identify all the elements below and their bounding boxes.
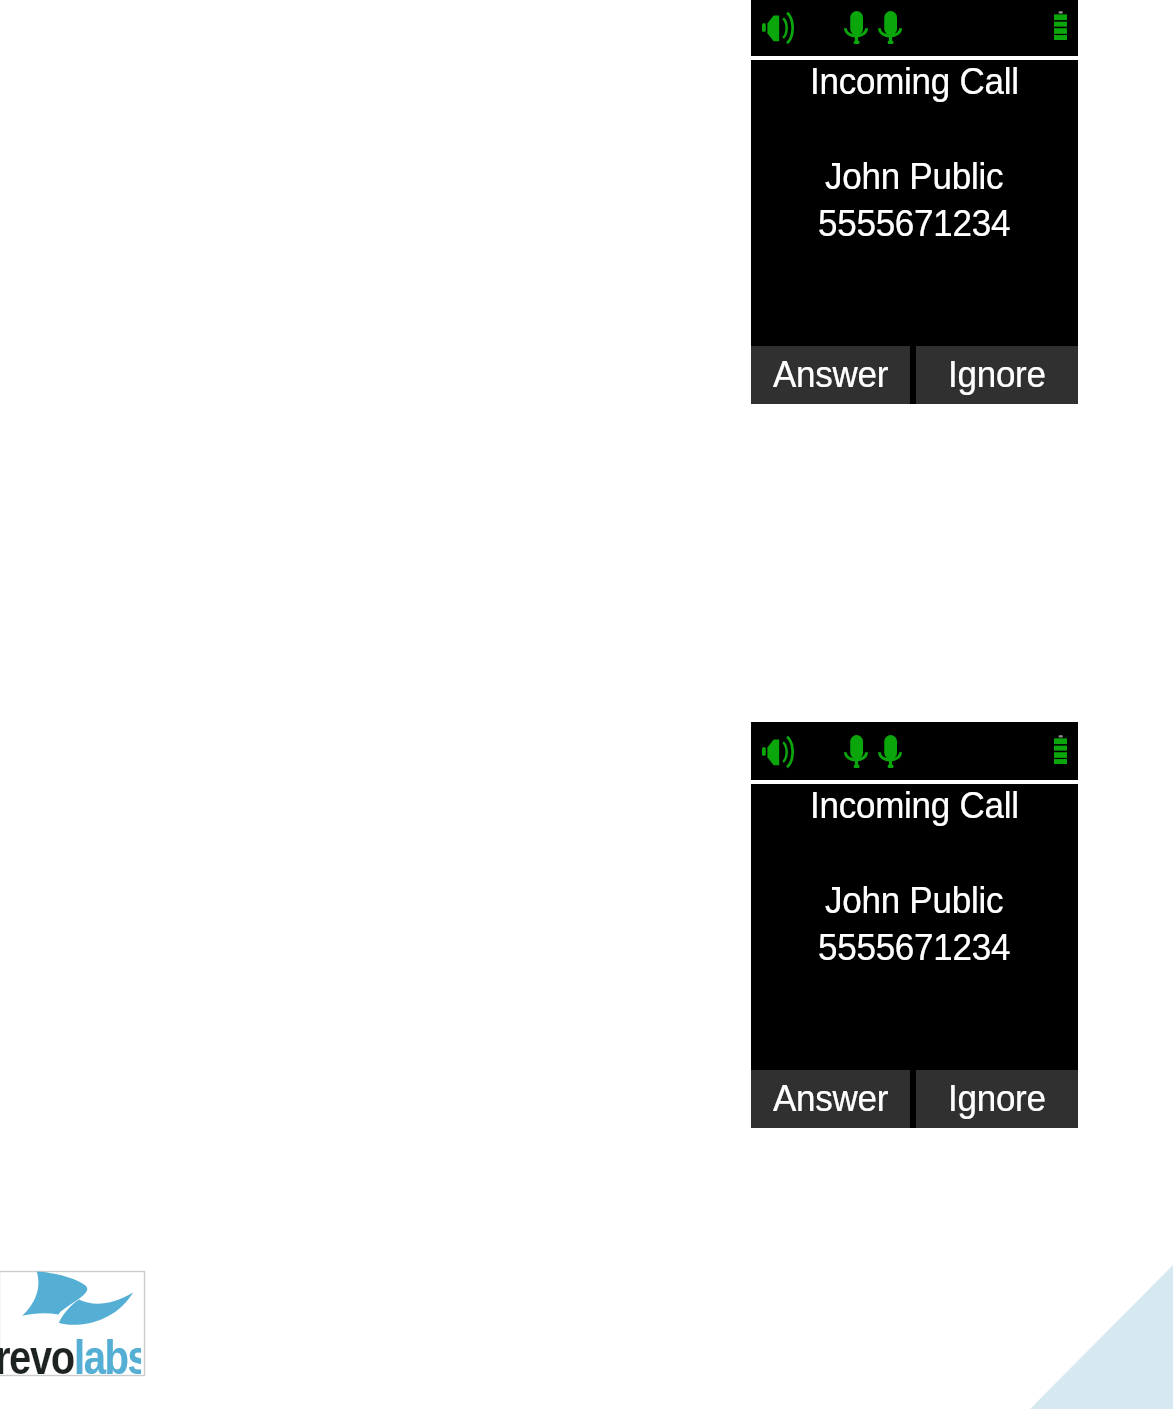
staticText: 5555671234 <box>818 201 1011 243</box>
staticText: John Public <box>825 878 1004 920</box>
staticText: Ignore <box>948 1076 1046 1118</box>
button[interactable]: Answer <box>751 346 910 404</box>
other: Microphone 1 <box>844 11 868 44</box>
other: Speaker <box>762 735 794 768</box>
button[interactable]: Ignore <box>916 346 1078 404</box>
other: Microphone 1 <box>844 735 868 768</box>
other: Battery level <box>1054 11 1067 40</box>
button[interactable]: Answer <box>751 1070 910 1128</box>
other: Microphone 2 <box>878 11 902 44</box>
staticText: revo <box>0 1332 74 1385</box>
staticText: Answer <box>773 1076 889 1118</box>
staticText: Incoming Call <box>810 59 1019 101</box>
staticText: Incoming Call <box>810 783 1019 825</box>
staticText: Ignore <box>948 352 1046 394</box>
staticText: labs <box>74 1332 141 1385</box>
other: Microphone 2 <box>878 735 902 768</box>
staticText: 5555671234 <box>818 925 1011 967</box>
button[interactable]: Ignore <box>916 1070 1078 1128</box>
staticText: John Public <box>825 154 1004 196</box>
other: Speaker <box>762 11 794 44</box>
staticText: Answer <box>773 352 889 394</box>
other: Battery level <box>1054 735 1067 764</box>
